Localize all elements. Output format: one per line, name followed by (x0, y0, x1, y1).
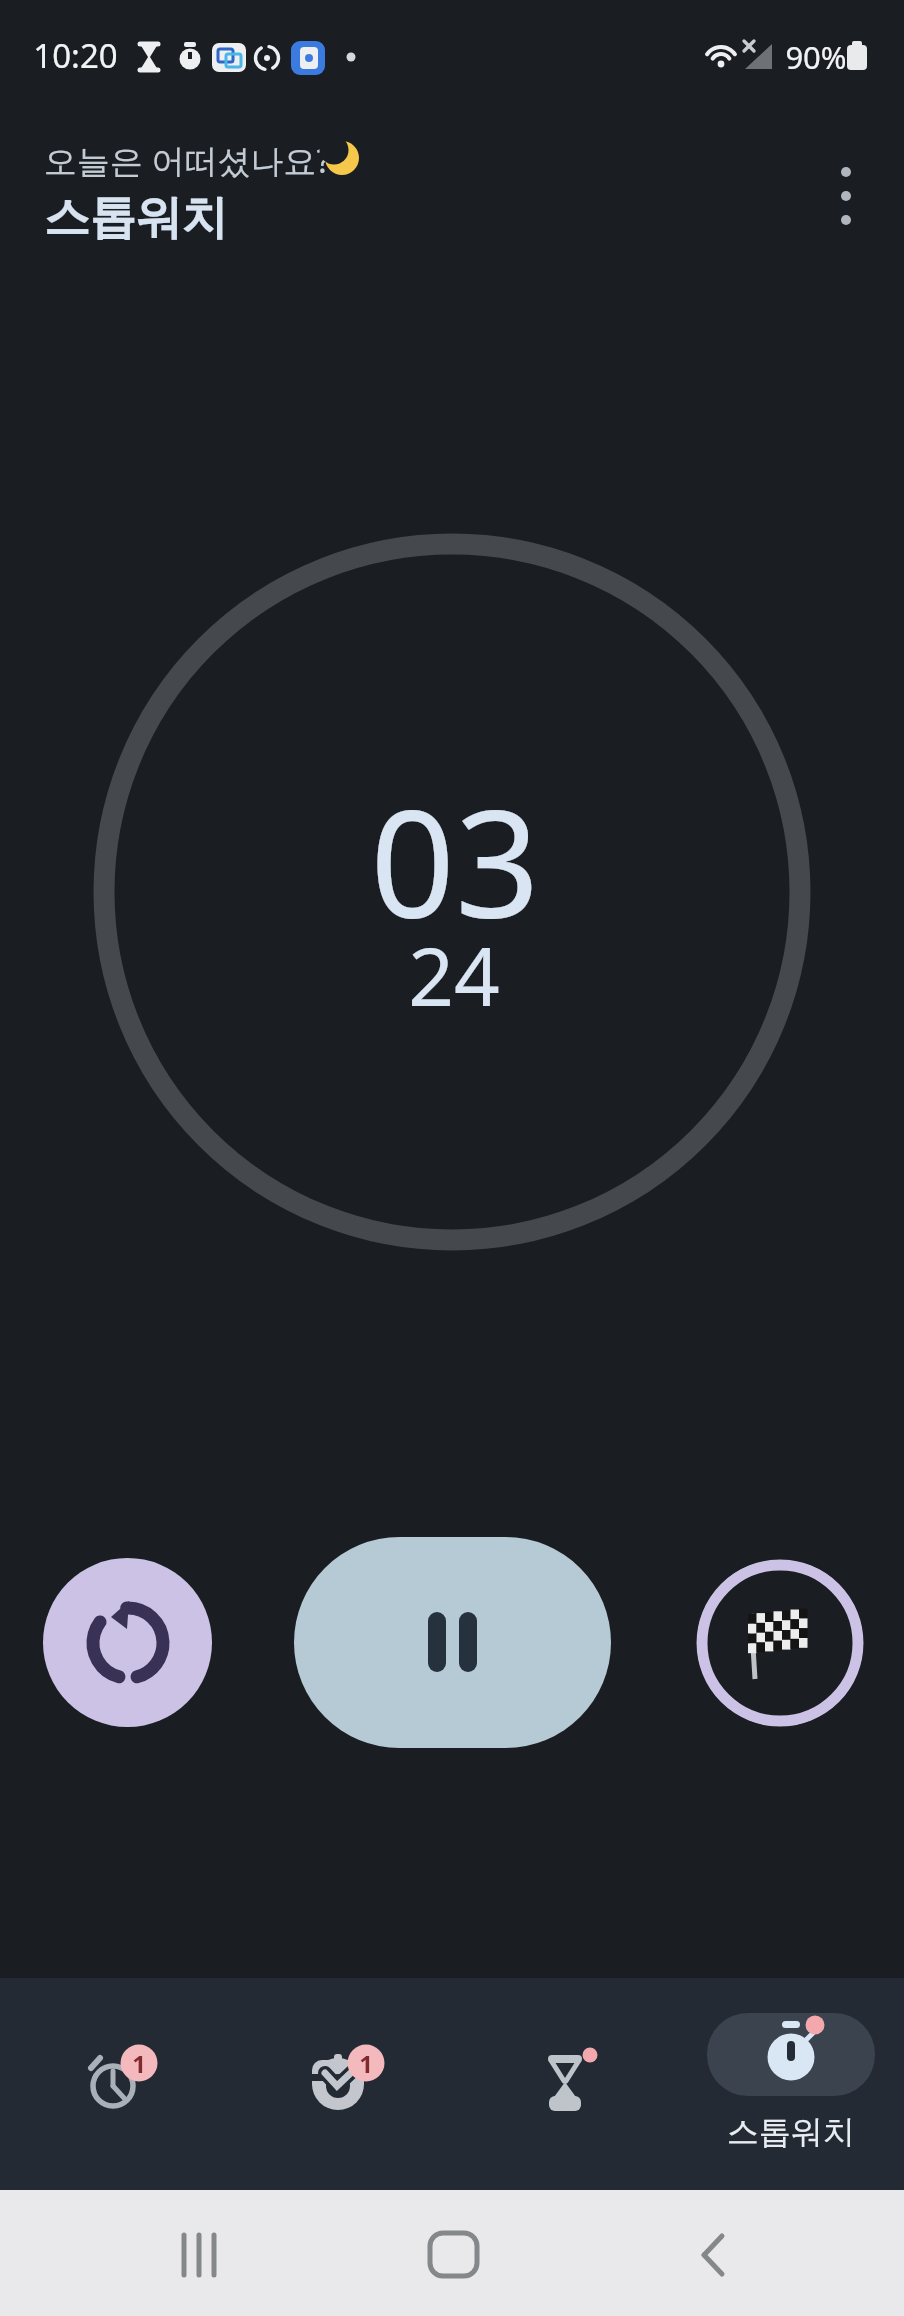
staticText: 스톱워치 (727, 2112, 855, 2152)
staticText: 1 (132, 2047, 146, 2080)
staticText: 10:20 (33, 33, 118, 77)
button[interactable] (452, 1978, 678, 2190)
button[interactable] (377, 2190, 527, 2316)
staticText: 90% (785, 36, 847, 78)
staticText: 오늘은 어떠셨나요? (44, 138, 331, 183)
staticText: 03 (370, 760, 540, 962)
staticText: 1 (359, 2047, 373, 2080)
button[interactable] (122, 2190, 272, 2316)
button[interactable] (294, 1537, 611, 1748)
button[interactable]: 1 (0, 1978, 226, 2190)
button[interactable] (638, 2190, 788, 2316)
button[interactable]: 스톱워치 (678, 1978, 904, 2190)
button[interactable]: 1 (226, 1978, 452, 2190)
staticText: 스톱워치 (44, 189, 228, 247)
staticText: 24 (408, 920, 500, 1029)
button[interactable] (696, 1559, 864, 1727)
button[interactable] (43, 1558, 212, 1727)
button[interactable] (818, 154, 874, 242)
